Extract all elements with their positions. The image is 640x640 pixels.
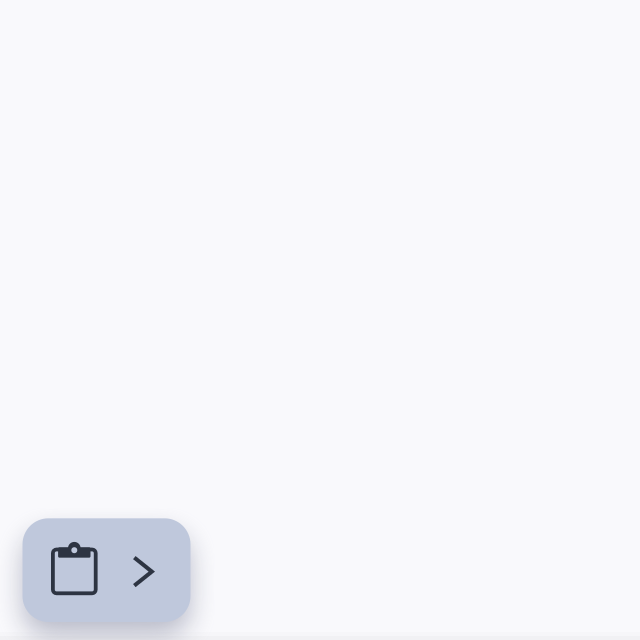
button[interactable]: Open clipboard [22, 518, 190, 622]
